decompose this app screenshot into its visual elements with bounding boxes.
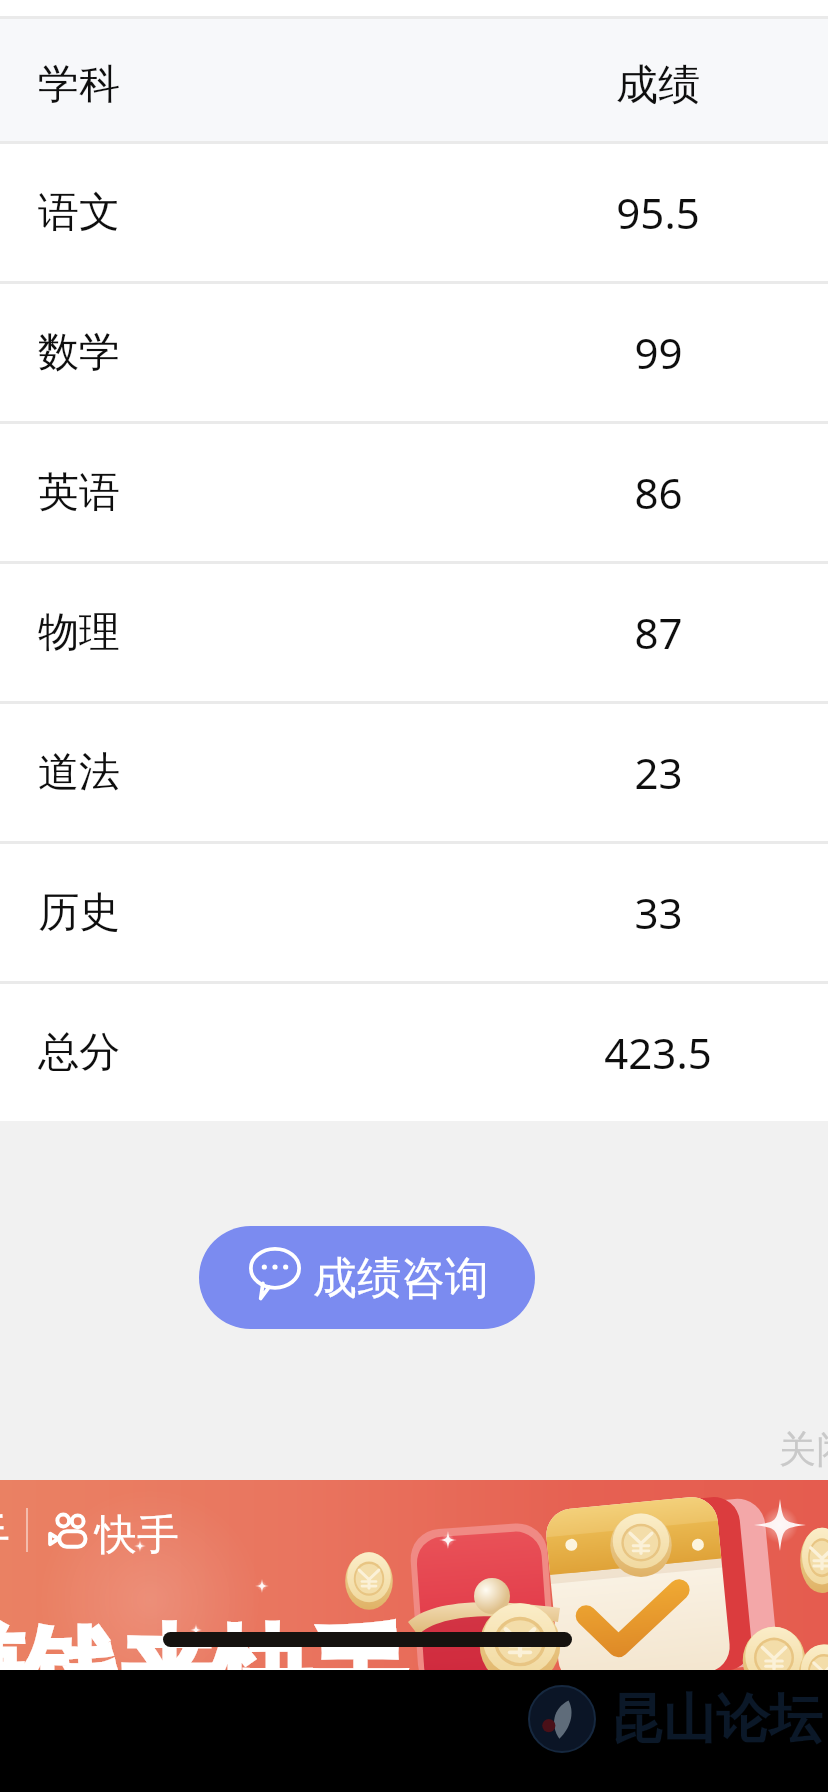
staticText: 赚钱来快手 [0,1613,407,1734]
staticText: 物理 [38,607,120,659]
staticText: 道法 [38,747,120,799]
staticText: 关闭 [779,1426,828,1473]
staticText: 23 [634,744,683,801]
staticText: 99 [634,324,683,381]
button[interactable]: 物理 [0,564,828,701]
staticText: 成绩 [616,59,700,112]
staticText: 423.5 [604,1024,712,1081]
button[interactable]: 英语 [0,424,828,561]
button[interactable]: 手 [0,1480,828,1670]
staticText: 英语 [38,467,120,519]
staticText: 总分 [38,1027,120,1079]
staticText: 数学 [38,327,120,379]
button[interactable]: 语文 [0,144,828,281]
staticText: 昆山论坛 [610,1686,822,1753]
button[interactable]: 历史 [0,844,828,981]
staticText: 86 [634,464,683,521]
button[interactable]: 成绩咨询 [199,1226,535,1329]
staticText: 手 [0,1509,10,1564]
staticText: 33 [634,884,683,941]
button[interactable]: 总分 [0,984,828,1121]
staticText: 87 [634,604,683,661]
staticText: 快手 [95,1509,179,1562]
button[interactable]: 道法 [0,704,828,841]
button[interactable]: 数学 [0,284,828,421]
button[interactable]: 学科 [0,19,828,141]
staticText: 学科 [38,59,120,111]
staticText: 语文 [38,187,120,239]
staticText: 95.5 [616,184,700,241]
other: 昆山论坛 [529,1686,595,1752]
staticText: 成绩咨询 [313,1251,489,1306]
staticText: 历史 [38,887,120,939]
